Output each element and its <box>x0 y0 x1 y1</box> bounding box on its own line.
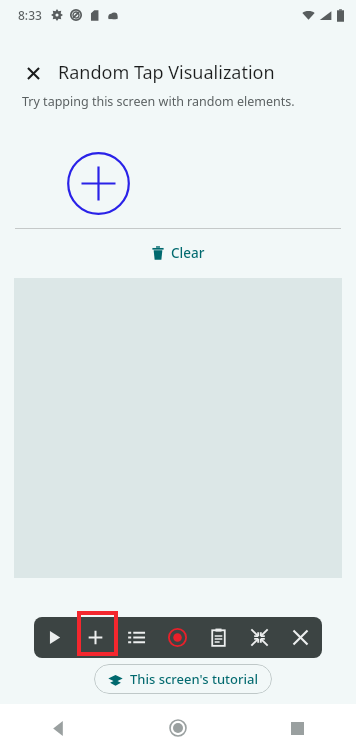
button[interactable]: Clipboard <box>198 617 239 658</box>
button[interactable]: Clear <box>145 241 211 265</box>
staticText: 8:33 <box>18 7 42 23</box>
staticText: Try tapping this screen with random elem… <box>22 93 295 110</box>
button[interactable]: Play <box>34 617 75 658</box>
button[interactable]: Recents <box>275 706 319 750</box>
button[interactable]: Record <box>157 617 198 658</box>
button[interactable]: Collapse <box>239 617 280 658</box>
button[interactable]: Back <box>37 706 81 750</box>
button[interactable]: Add element <box>75 617 116 658</box>
button[interactable]: Close <box>22 62 44 84</box>
button[interactable]: Add random element <box>67 152 130 215</box>
button[interactable]: List <box>116 617 157 658</box>
button[interactable]: Close <box>280 617 321 658</box>
staticText: Random Tap Visualization <box>58 60 275 85</box>
staticText: This screen's tutorial <box>130 670 258 688</box>
staticText: Clear <box>171 244 205 262</box>
button[interactable]: Home <box>156 706 200 750</box>
button[interactable]: This screen's tutorial <box>94 664 272 694</box>
